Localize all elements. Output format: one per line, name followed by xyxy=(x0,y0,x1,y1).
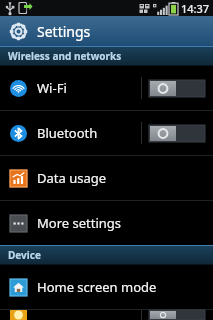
staticText: Settings xyxy=(37,22,91,41)
staticText: Data usage xyxy=(37,169,107,187)
button[interactable]: Toggle xyxy=(149,125,205,142)
button[interactable]: Toggle xyxy=(0,310,213,320)
staticText: Device xyxy=(8,248,41,262)
button[interactable]: More settings xyxy=(0,201,213,245)
button[interactable]: Wi-Fi xyxy=(0,66,213,110)
staticText: 14:37 xyxy=(181,1,210,16)
staticText: Wireless and networks xyxy=(8,49,122,63)
staticText: Wi-Fi xyxy=(37,79,67,97)
staticText: Home screen mode xyxy=(37,278,157,296)
staticText: More settings xyxy=(37,214,122,232)
button[interactable]: Toggle xyxy=(149,80,205,97)
button[interactable]: Home screen mode xyxy=(0,265,213,309)
staticText: Bluetooth xyxy=(37,124,98,142)
button[interactable]: Bluetooth xyxy=(0,111,213,155)
button[interactable]: Toggle xyxy=(149,310,205,320)
other: Settings xyxy=(9,22,28,41)
button[interactable]: Data usage xyxy=(0,156,213,200)
